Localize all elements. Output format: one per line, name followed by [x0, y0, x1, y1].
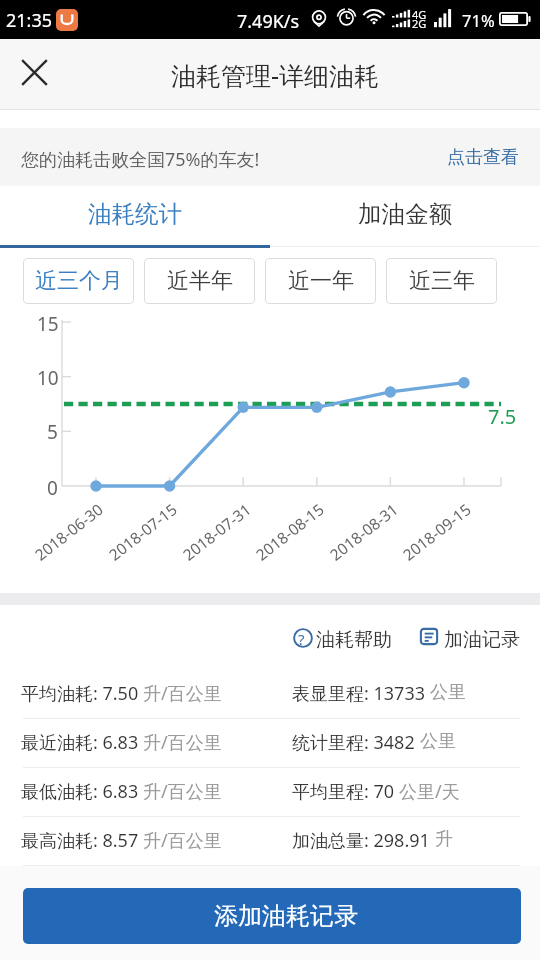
staticText: 油耗管理-详细油耗 — [5, 58, 540, 92]
staticText: 公里 — [420, 730, 456, 753]
button[interactable]: 加油记录 — [417, 611, 525, 666]
staticText: 加油总量: 298.91 — [292, 828, 435, 853]
staticText: 平均油耗: 7.50 — [21, 681, 143, 706]
staticText: 7.5 — [488, 403, 517, 430]
staticText: 4G — [412, 7, 427, 22]
staticText: 您的油耗击败全国75%的车友! — [21, 147, 260, 172]
button[interactable]: 近半年 — [144, 258, 255, 304]
staticText: 最近油耗: 6.83 — [21, 730, 143, 755]
staticText: 2018-06-30 — [30, 498, 106, 564]
staticText: 21:35 — [6, 8, 53, 33]
staticText: 2018-07-15 — [104, 498, 180, 564]
button[interactable]: 近一年 — [265, 258, 376, 304]
staticText: 表显里程: 13733 — [292, 681, 430, 706]
staticText: 近半年 — [167, 267, 233, 295]
staticText: 添加油耗记录 — [214, 901, 358, 931]
staticText: 公里/天 — [399, 779, 460, 804]
button[interactable]: 添加油耗记录 — [23, 888, 521, 944]
staticText: 2018-08-31 — [325, 498, 401, 564]
staticText: 油耗帮助 — [316, 628, 392, 652]
staticText: 油耗统计 — [88, 199, 182, 229]
staticText: 近三个月 — [35, 267, 123, 295]
staticText: 2018-08-15 — [251, 498, 327, 564]
button[interactable]: 加油金额 — [270, 186, 540, 257]
staticText: ? — [298, 629, 305, 649]
staticText: 升/百公里 — [143, 828, 222, 853]
button[interactable]: 近三个月 — [23, 258, 134, 304]
staticText: 最高油耗: 8.57 — [21, 828, 143, 853]
button[interactable]: 油耗统计 — [0, 186, 270, 257]
staticText: 近一年 — [288, 267, 354, 295]
staticText: 加油记录 — [444, 628, 520, 652]
staticText: 公里 — [430, 681, 466, 704]
button[interactable]: 近三年 — [386, 258, 497, 304]
staticText: 近三年 — [409, 267, 475, 295]
staticText: 升/百公里 — [143, 730, 222, 755]
button[interactable]: ? — [289, 611, 400, 666]
staticText: 统计里程: 3482 — [292, 730, 420, 755]
staticText: 2G — [412, 16, 427, 31]
staticText: 最低油耗: 6.83 — [21, 779, 143, 804]
staticText: 7.49K/s — [237, 9, 300, 34]
staticText: 0 — [47, 475, 58, 501]
button[interactable]: 点击查看 — [427, 128, 540, 186]
staticText: 5 — [47, 419, 58, 445]
staticText: 平均里程: 70 — [292, 779, 399, 804]
staticText: 升 — [435, 828, 453, 851]
staticText: 升/百公里 — [143, 779, 222, 804]
staticText: 71% — [462, 9, 495, 31]
button[interactable]: Close — [12, 50, 57, 95]
staticText: 点击查看 — [447, 146, 519, 169]
staticText: 加油金额 — [358, 199, 452, 229]
staticText: 2018-07-31 — [178, 498, 254, 564]
staticText: 2018-09-15 — [398, 498, 474, 564]
staticText: 10 — [37, 365, 59, 391]
staticText: 升/百公里 — [143, 681, 222, 706]
staticText: 15 — [37, 311, 59, 337]
